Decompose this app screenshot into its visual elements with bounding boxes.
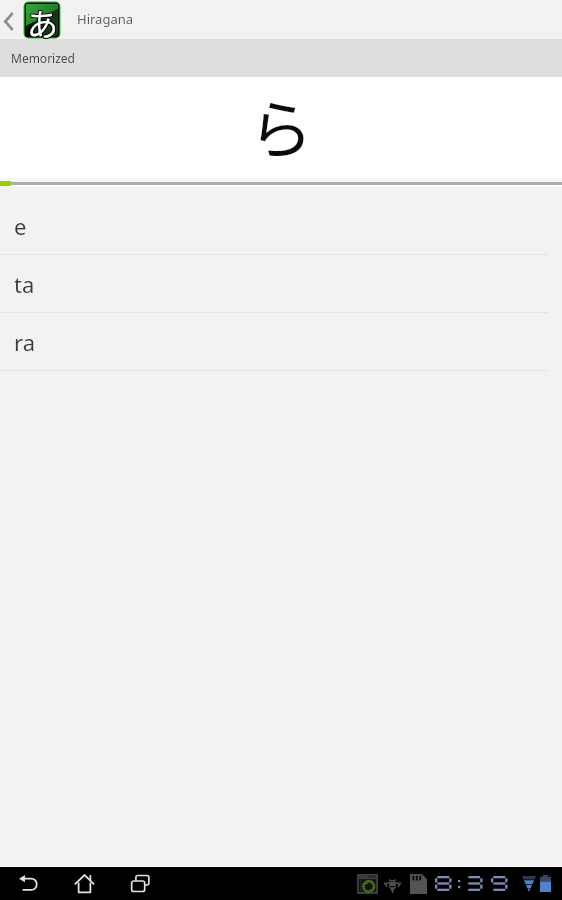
staticText: あ [26,1,57,39]
button[interactable]: Back [0,867,56,900]
button[interactable]: Recent apps [112,867,168,900]
staticText: あ [28,0,59,38]
staticText: あ [27,1,58,39]
button[interactable]: ta [0,255,562,312]
staticText: Memorized [11,50,75,66]
button[interactable]: Memorized [0,39,562,77]
staticText: あ [28,0,59,37]
button[interactable]: ra [0,313,562,370]
staticText: e [14,211,27,241]
staticText: あ [26,0,57,37]
button[interactable]: Home [56,867,112,900]
staticText: ら [249,79,313,172]
staticText: ra [14,327,35,357]
staticText: あ [26,0,57,38]
staticText: ta [14,269,35,299]
staticText: Hiragana [77,10,134,28]
staticText: あ [27,0,58,38]
staticText: あ [28,1,59,39]
button[interactable]: e [0,197,562,254]
button[interactable]: Navigate up [0,0,23,39]
staticText: あ [27,0,58,37]
